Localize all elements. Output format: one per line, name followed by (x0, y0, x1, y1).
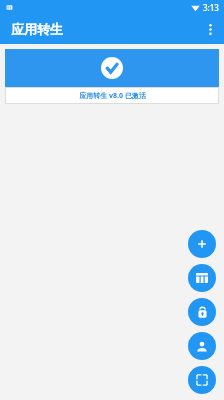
button[interactable]: Add (188, 230, 216, 258)
button[interactable]: More options (196, 15, 224, 43)
button[interactable]: Account (188, 332, 216, 360)
button[interactable]: Lock (188, 298, 216, 326)
staticText: 应用转生 v8.0 已激活 (79, 91, 146, 101)
staticText: 应用转生 (11, 21, 63, 37)
button[interactable]: App list (188, 264, 216, 292)
button[interactable]: Scan (188, 366, 216, 394)
button[interactable] (5, 49, 219, 87)
button[interactable]: 应用转生 v8.0 已激活 (5, 87, 219, 104)
staticText: 3:13 (203, 2, 219, 13)
